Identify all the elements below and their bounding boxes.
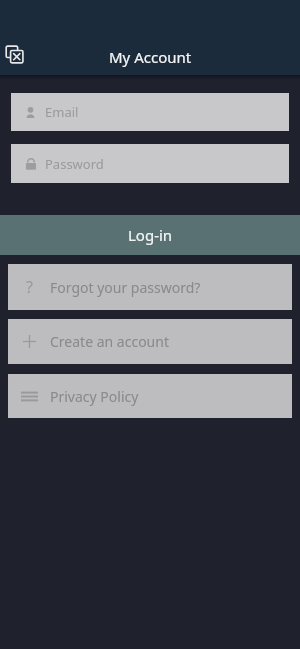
button[interactable]: Privacy Policy (8, 374, 292, 418)
staticText: Email (45, 103, 79, 121)
button[interactable]: Log-in (0, 215, 300, 255)
staticText: Log-in (128, 225, 173, 245)
staticText: Forgot your password? (50, 278, 201, 297)
staticText: Create an account (50, 332, 169, 351)
button[interactable]: ? (8, 264, 292, 310)
staticText: My Account (109, 47, 192, 67)
button[interactable] (4, 43, 26, 65)
staticText: Password (45, 155, 104, 173)
staticText: ? (26, 276, 33, 298)
button[interactable]: Create an account (8, 319, 292, 364)
staticText: Privacy Policy (50, 387, 139, 406)
button[interactable]: Password (11, 144, 289, 183)
button[interactable]: Email (11, 93, 289, 131)
